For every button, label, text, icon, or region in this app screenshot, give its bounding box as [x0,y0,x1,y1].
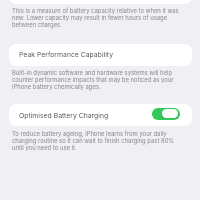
staticText: charging routine so it can wait to finis… [12,137,175,144]
staticText: This is a measure of battery capacity re… [12,7,179,14]
button[interactable]: Optimised Battery Charging [152,108,180,120]
button[interactable]: Optimised Battery Charging [9,104,192,126]
staticText: between charges. [12,21,62,28]
staticText: new. Lower capacity may result in fewer … [12,14,168,21]
staticText: Optimised Battery Charging [19,111,109,119]
staticText: Built-in dynamic software and hardware s… [12,69,173,76]
staticText: until you need to use it. [12,144,77,151]
staticText: counter performance impacts that may be … [12,76,174,83]
button[interactable]: Peak Performance Capability [9,44,192,66]
staticText: Peak Performance Capability [19,50,114,58]
staticText: iPhone battery chemically ages. [12,83,101,90]
staticText: To reduce battery ageing, iPhone learns … [12,130,167,137]
